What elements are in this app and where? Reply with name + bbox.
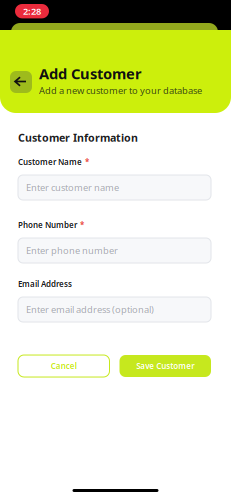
staticText: Cancel	[51, 361, 77, 371]
staticText: Customer Name	[18, 157, 82, 167]
staticText: Enter email address (optional)	[26, 303, 154, 316]
staticText: Enter customer name	[26, 181, 119, 194]
staticText: Email Address	[18, 279, 72, 289]
button[interactable]: Back	[10, 71, 32, 93]
staticText: *	[80, 220, 84, 230]
staticText: Add a new customer to your database	[39, 84, 202, 97]
staticText: Enter phone number	[26, 244, 118, 257]
staticText: Add Customer	[39, 64, 142, 83]
staticText: *	[85, 157, 89, 167]
button[interactable]: Cancel	[18, 355, 109, 377]
staticText: Customer Information	[18, 130, 138, 145]
staticText: Save Customer	[136, 361, 194, 371]
button[interactable]: Save Customer	[119, 355, 211, 377]
staticText: 2:28	[23, 5, 41, 17]
staticText: Phone Number	[18, 220, 77, 230]
